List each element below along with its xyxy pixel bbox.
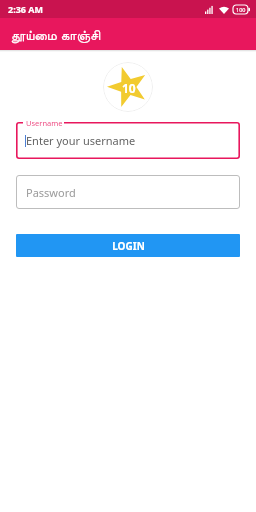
staticText: தூய்மை காஞ்சி: [11, 25, 101, 44]
staticText: 100: [236, 6, 246, 13]
staticText: Password: [26, 185, 76, 200]
staticText: Enter your username: [26, 133, 136, 148]
button[interactable]: Password: [16, 175, 240, 209]
staticText: 10: [122, 80, 136, 96]
other: Battery 100 percent: [233, 5, 250, 14]
other: Signal strength: [205, 6, 215, 14]
button[interactable]: LOGIN: [16, 234, 240, 257]
staticText: LOGIN: [112, 239, 145, 253]
other: Wi-Fi: [219, 6, 229, 14]
staticText: 2:36 AM: [8, 3, 44, 15]
button[interactable]: Username: [16, 122, 240, 159]
staticText: Username: [26, 118, 63, 128]
